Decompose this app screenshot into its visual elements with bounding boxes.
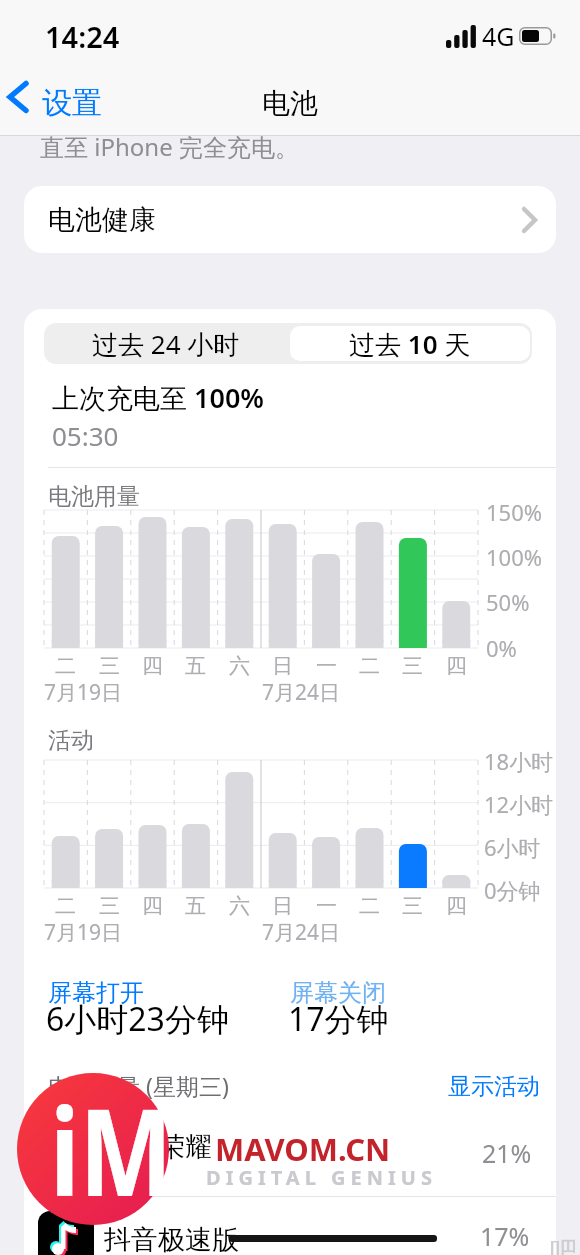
- staticText: 7月24日: [262, 678, 341, 707]
- staticText: 吧: [550, 1235, 578, 1255]
- staticText: 电池用量 (星期三): [48, 1070, 229, 1101]
- staticText: 7月19日: [44, 918, 123, 947]
- staticText: 二: [359, 653, 380, 679]
- staticText: 17%: [480, 1219, 530, 1253]
- staticText: 日: [272, 653, 293, 679]
- staticText: 上次充电至 100%: [52, 379, 264, 416]
- staticText: 18小时: [484, 746, 554, 776]
- staticText: 三: [99, 893, 120, 919]
- staticText: 六: [229, 893, 250, 919]
- staticText: 四: [142, 893, 163, 919]
- button[interactable]: [24, 1102, 556, 1196]
- button[interactable]: [24, 1197, 556, 1255]
- staticText: 五: [185, 893, 206, 919]
- staticText: 4G: [482, 19, 515, 53]
- staticText: 四: [446, 653, 467, 679]
- staticText: 屏幕打开: [48, 978, 144, 1008]
- staticText: 二: [55, 893, 76, 919]
- staticText: 17分钟: [288, 997, 389, 1041]
- button[interactable]: 过去 10 天: [288, 323, 532, 364]
- staticText: MAVOM.CN: [215, 1128, 391, 1170]
- staticText: 四: [142, 653, 163, 679]
- staticText: 二: [359, 893, 380, 919]
- staticText: 直至 iPhone 完全充电。: [40, 130, 299, 163]
- button[interactable]: 电池健康: [24, 186, 556, 253]
- staticText: 7月24日: [262, 918, 341, 947]
- staticText: 电池健康: [48, 203, 156, 237]
- staticText: 0%: [486, 633, 517, 663]
- staticText: 屏幕关闭: [290, 978, 386, 1008]
- staticText: 四: [446, 893, 467, 919]
- staticText: 一: [316, 653, 337, 679]
- staticText: 6小时: [484, 832, 541, 862]
- button[interactable]: 过去 24 小时: [44, 323, 288, 364]
- staticText: 电池: [262, 86, 318, 121]
- staticText: 电池用量: [48, 482, 140, 511]
- staticText: 过去 10 天: [349, 326, 471, 362]
- staticText: 21%: [482, 1136, 532, 1170]
- staticText: 14:24: [45, 17, 120, 56]
- staticText: 6小时23分钟: [46, 997, 229, 1041]
- staticText: 0分钟: [484, 875, 541, 905]
- staticText: 王者荣耀: [104, 1130, 212, 1164]
- staticText: 50%: [486, 587, 530, 617]
- button[interactable]: [8, 84, 118, 124]
- staticText: 过去 24 小时: [92, 326, 240, 362]
- staticText: 活动: [48, 726, 94, 755]
- staticText: 六: [229, 653, 250, 679]
- staticText: 7月19日: [44, 678, 123, 707]
- staticText: 150%: [486, 497, 543, 527]
- staticText: iM: [50, 1068, 173, 1231]
- staticText: 设置: [42, 84, 102, 122]
- staticText: 三: [402, 893, 423, 919]
- staticText: 12小时: [484, 789, 554, 819]
- staticText: 日: [272, 893, 293, 919]
- staticText: 五: [185, 653, 206, 679]
- staticText: DIGITAL GENIUS: [206, 1164, 437, 1191]
- staticText: 显示活动: [448, 1072, 540, 1101]
- staticText: 二: [55, 653, 76, 679]
- staticText: 一: [316, 893, 337, 919]
- staticText: 05:30: [52, 418, 119, 453]
- staticText: 三: [99, 653, 120, 679]
- staticText: 100%: [486, 542, 543, 572]
- staticText: 抖音极速版: [104, 1223, 239, 1255]
- staticText: 三: [402, 653, 423, 679]
- button[interactable]: [400, 1065, 556, 1105]
